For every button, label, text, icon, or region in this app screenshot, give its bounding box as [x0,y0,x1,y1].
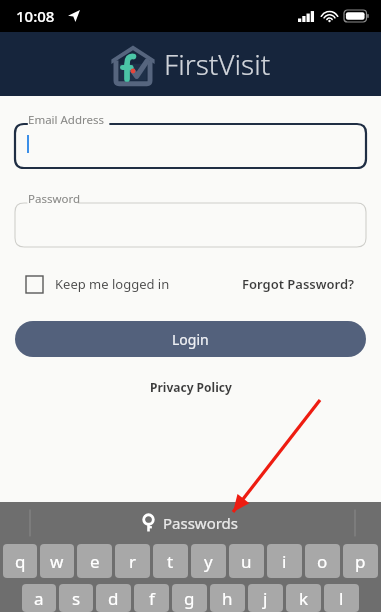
button[interactable]: t [153,544,188,578]
button[interactable]: o [305,544,340,578]
button[interactable]: j [248,584,283,612]
staticText: Login [172,330,209,349]
button[interactable]: l [324,584,359,612]
staticText: d [108,587,119,610]
button[interactable]: f [134,584,169,612]
staticText: Forgot Password? [242,275,355,293]
staticText: t [167,550,174,573]
button[interactable]: Password [15,191,366,247]
staticText: y [204,550,213,573]
button[interactable]: w [40,544,74,578]
button[interactable]: s [59,584,93,612]
button[interactable]: Passwords [134,509,247,537]
button[interactable]: Privacy Policy [150,379,232,395]
button[interactable]: e [77,544,112,578]
button[interactable]: Login [15,321,366,357]
staticText: FirstVisit [164,45,271,83]
button[interactable]: a [22,584,56,612]
button[interactable]: q [3,544,37,578]
staticText: l [339,587,344,610]
staticText: f [149,587,155,610]
staticText: w [50,550,64,573]
staticText: a [34,587,44,610]
button[interactable]: u [229,544,264,578]
staticText: Privacy Policy [150,379,232,395]
staticText: 10:08 [16,6,55,26]
staticText: k [299,587,309,610]
staticText: g [184,587,195,610]
button[interactable]: Forgot Password? [242,275,355,293]
button[interactable]: y [191,544,226,578]
staticText: j [263,587,268,610]
button[interactable]: g [172,584,207,612]
staticText: h [222,587,233,610]
button[interactable]: Email Address [15,112,366,168]
button[interactable]: k [286,584,321,612]
button[interactable]: r [115,544,150,578]
button[interactable]: h [210,584,245,612]
staticText: o [317,550,328,573]
other: Passwords [142,515,155,532]
button[interactable]: i [267,544,302,578]
staticText: i [282,550,287,573]
staticText: e [90,550,100,573]
staticText: p [355,550,366,573]
staticText: s [72,587,81,610]
staticText: Email Address [28,112,105,128]
button[interactable]: Keep me logged in [26,275,170,293]
button[interactable]: d [96,584,131,612]
staticText: u [241,550,252,573]
staticText: Passwords [163,513,239,533]
staticText: q [15,550,26,573]
staticText: r [129,550,137,573]
staticText: Password [28,191,81,207]
button[interactable]: p [343,544,378,578]
staticText: Keep me logged in [55,275,170,293]
